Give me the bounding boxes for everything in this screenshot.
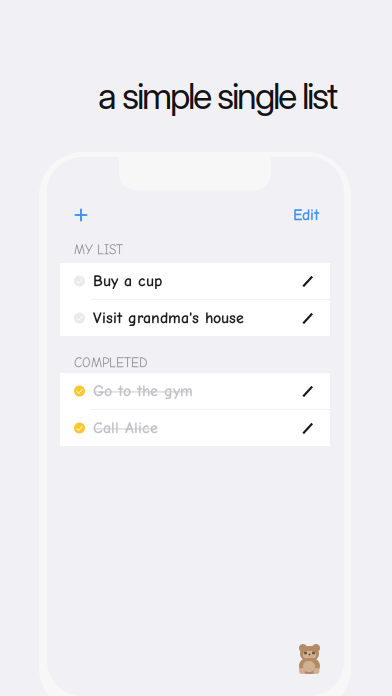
staticText: a simple single list — [98, 74, 338, 118]
staticText: Buy a cup — [93, 272, 162, 290]
button[interactable]: Go to the gym — [60, 373, 330, 409]
staticText: Go to the gym — [93, 382, 193, 400]
button[interactable]: Call Alice — [60, 410, 330, 446]
staticText: MY LIST — [74, 242, 123, 258]
button[interactable]: Buy a cup — [60, 263, 330, 299]
button[interactable]: Visit grandma's house — [60, 300, 330, 336]
staticText: Edit — [293, 206, 319, 224]
button[interactable]: Add item — [59, 198, 103, 232]
staticText: Call Alice — [93, 419, 158, 437]
staticText: COMPLETED — [74, 355, 147, 371]
button[interactable]: Edit — [280, 198, 332, 232]
staticText: Visit grandma's house — [93, 309, 244, 327]
